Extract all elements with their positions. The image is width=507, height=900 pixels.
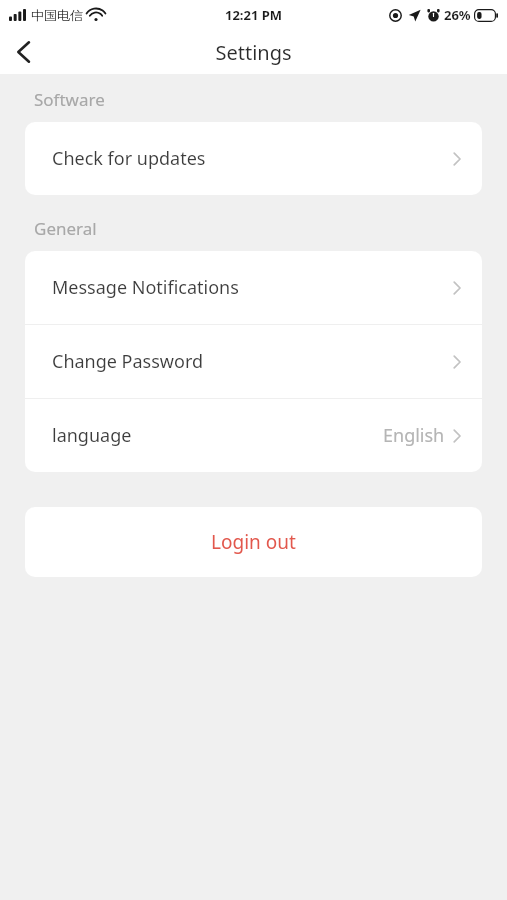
staticText: 26%	[444, 6, 471, 24]
button[interactable]: Login out	[25, 507, 482, 577]
staticText: 中国电信	[31, 7, 83, 23]
button[interactable]: language	[25, 399, 482, 472]
staticText: Message Notifications	[52, 275, 239, 300]
staticText: English	[383, 423, 445, 448]
staticText: Software	[34, 88, 105, 111]
staticText: General	[34, 217, 97, 240]
staticText: Check for updates	[52, 146, 206, 171]
button[interactable]: Change Password	[25, 325, 482, 398]
staticText: Change Password	[52, 349, 204, 374]
button[interactable]: Back	[0, 30, 46, 74]
staticText: 12:21 PM	[225, 6, 283, 24]
staticText: language	[52, 423, 132, 448]
staticText: Settings	[215, 39, 292, 66]
button[interactable]: Message Notifications	[25, 251, 482, 324]
button[interactable]: Check for updates	[25, 122, 482, 195]
staticText: Login out	[211, 529, 296, 555]
